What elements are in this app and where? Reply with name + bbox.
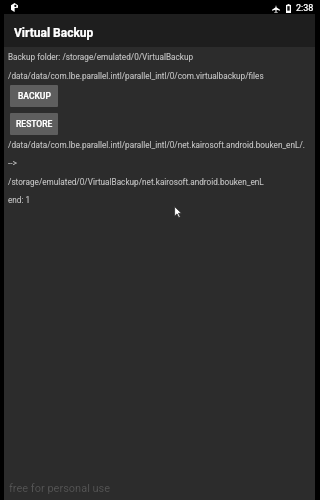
staticText: /storage/emulated/0/VirtualBackup/net.ka… xyxy=(8,177,264,187)
other: Notification xyxy=(11,3,18,12)
staticText: end: 1 xyxy=(8,195,31,205)
staticText: Virtual Backup xyxy=(14,26,94,40)
staticText: free for personal use xyxy=(9,482,111,495)
staticText: 2:38 xyxy=(296,3,314,14)
staticText: /data/data/com.lbe.parallel.intl/paralle… xyxy=(8,140,305,150)
button[interactable]: RESTORE xyxy=(10,113,58,135)
staticText: --> xyxy=(8,158,17,168)
staticText: /data/data/com.lbe.parallel.intl/paralle… xyxy=(8,71,264,81)
staticText: RESTORE xyxy=(16,119,53,129)
staticText: BACKUP xyxy=(18,91,51,101)
staticText: Backup folder: /storage/emulated/0/Virtu… xyxy=(8,52,194,62)
button[interactable]: BACKUP xyxy=(10,85,58,107)
